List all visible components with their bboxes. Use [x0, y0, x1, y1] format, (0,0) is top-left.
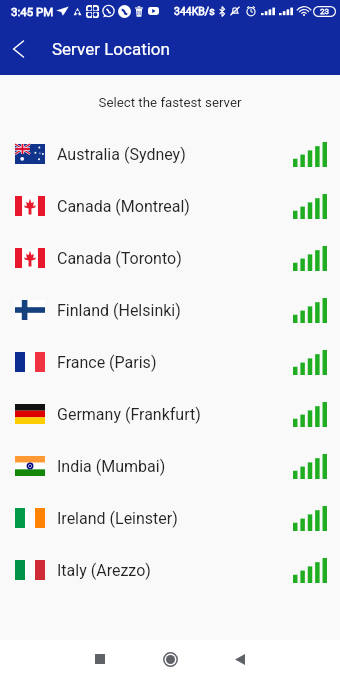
button[interactable]: Italy (Arezzo) [0, 544, 340, 596]
button[interactable]: Finland (Helsinki) [0, 284, 340, 336]
staticText: Canada (Montreal) [57, 197, 190, 216]
staticText: India (Mumbai) [57, 457, 166, 476]
button[interactable]: Home [150, 639, 190, 679]
staticText: Italy (Arezzo) [57, 561, 151, 580]
button[interactable]: Back [220, 639, 260, 679]
button[interactable]: Canada (Toronto) [0, 232, 340, 284]
button[interactable]: Ireland (Leinster) [0, 492, 340, 544]
button[interactable]: India (Mumbai) [0, 440, 340, 492]
button[interactable]: Back [0, 22, 36, 75]
staticText: 3:45 PM [11, 5, 54, 18]
staticText: Server Location [52, 39, 170, 59]
button[interactable]: France (Paris) [0, 336, 340, 388]
staticText: Ireland (Leinster) [57, 509, 178, 528]
button[interactable]: Canada (Montreal) [0, 180, 340, 232]
staticText: 23 [320, 7, 329, 16]
button[interactable]: Recent apps [80, 639, 120, 679]
staticText: France (Paris) [57, 353, 157, 372]
staticText: Australia (Sydney) [57, 145, 186, 164]
staticText: Germany (Frankfurt) [57, 405, 201, 424]
staticText: 344KB/s [174, 5, 215, 17]
button[interactable]: Germany (Frankfurt) [0, 388, 340, 440]
button[interactable]: Australia (Sydney) [0, 128, 340, 180]
staticText: Canada (Toronto) [57, 249, 182, 268]
staticText: Select the fastest server [0, 95, 340, 111]
staticText: Finland (Helsinki) [57, 301, 181, 320]
